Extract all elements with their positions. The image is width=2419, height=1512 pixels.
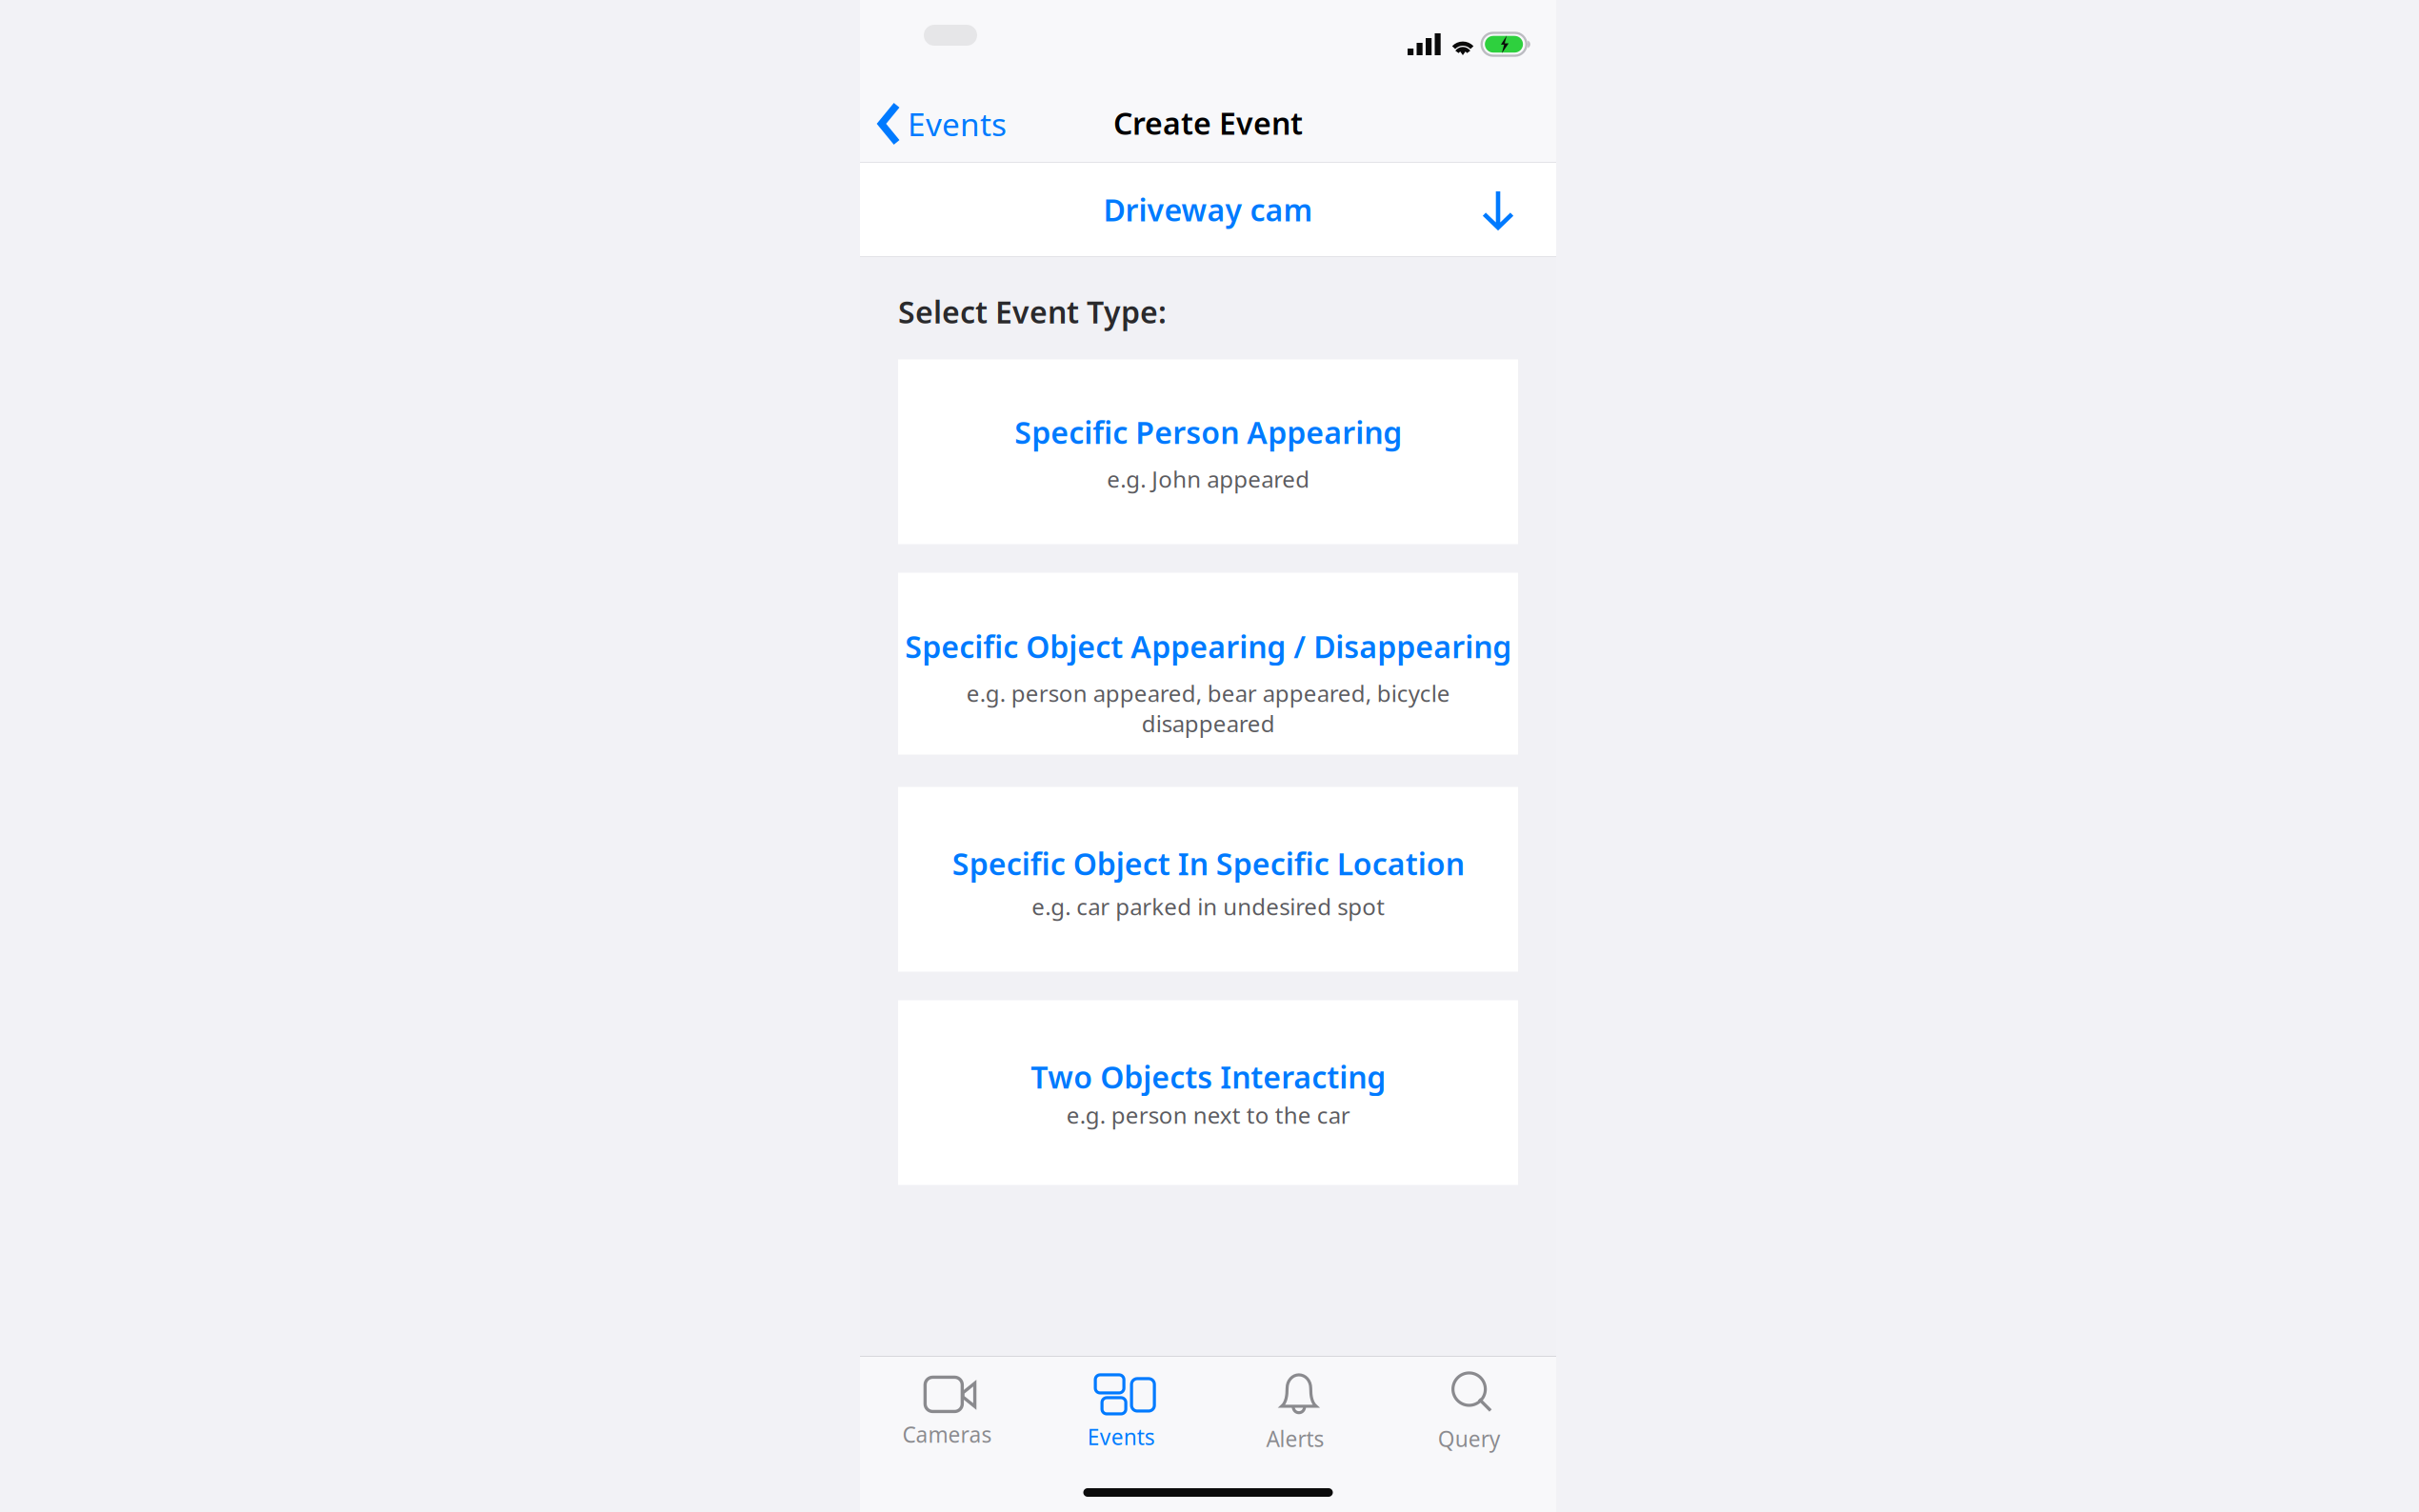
staticText: e.g. John appeared	[1107, 464, 1309, 494]
staticText: Alerts	[1266, 1424, 1324, 1453]
staticText: Query	[1438, 1424, 1501, 1453]
staticText: e.g. person next to the car	[1066, 1100, 1350, 1130]
staticText: Cameras	[902, 1420, 992, 1449]
staticText: Specific Person Appearing	[1014, 412, 1402, 452]
staticText: Events	[908, 103, 1007, 145]
button[interactable]: Specific Person Appearing	[898, 359, 1518, 544]
button[interactable]: Events	[873, 83, 1010, 157]
staticText: Create Event	[1113, 103, 1303, 143]
staticText: Specific Object In Specific Location	[952, 843, 1464, 884]
button[interactable]: Driveway cam	[860, 162, 1556, 257]
staticText: Two Objects Interacting	[1030, 1056, 1386, 1097]
button[interactable]: Events	[1034, 1357, 1208, 1448]
staticText: e.g. car parked in undesired spot	[1031, 891, 1385, 922]
staticText: Specific Object Appearing / Disappearing	[905, 626, 1511, 666]
staticText: Events	[1087, 1422, 1155, 1451]
button[interactable]: Cameras	[860, 1357, 1034, 1448]
button[interactable]: Specific Object Appearing / Disappearing	[898, 573, 1518, 755]
button[interactable]: Alerts	[1208, 1357, 1382, 1448]
staticText: e.g. person appeared, bear appeared, bic…	[966, 678, 1450, 739]
staticText: Driveway cam	[1103, 189, 1313, 230]
button[interactable]: Query	[1382, 1357, 1556, 1448]
staticText: Select Event Type:	[898, 291, 1167, 332]
button[interactable]: Two Objects Interacting	[898, 1000, 1518, 1185]
button[interactable]: Specific Object In Specific Location	[898, 787, 1518, 972]
